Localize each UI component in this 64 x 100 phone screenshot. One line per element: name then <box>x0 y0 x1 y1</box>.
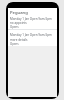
staticText: Opens <box>10 42 19 46</box>
button[interactable]: Monday 1 Jan Open 9am-5pm <box>8 16 57 29</box>
staticText: Monday 1 Jan Open 9am-5pm <box>10 33 52 37</box>
button[interactable]: Monday 1 Jan Open 9am-5pm <box>8 30 57 46</box>
staticText: Monday 1 Jan Open 9am-5pm <box>10 17 52 21</box>
staticText: no appoints <box>10 21 27 25</box>
staticText: Peguang <box>10 10 28 16</box>
staticText: Opens <box>10 25 19 29</box>
staticText: more details <box>10 38 28 42</box>
